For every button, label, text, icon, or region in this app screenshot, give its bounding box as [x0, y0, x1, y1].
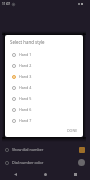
button[interactable]: Home — [30, 168, 60, 180]
staticText: 11:07 — [2, 2, 11, 6]
button[interactable]: Hand 7 — [5, 115, 83, 126]
staticText: Hand 2 — [19, 63, 32, 68]
button[interactable]: Hand 5 — [5, 93, 83, 104]
staticText: Select hand style — [10, 39, 45, 45]
staticText: Hand 3 — [19, 74, 32, 79]
button[interactable]: Hand 1 — [5, 49, 83, 60]
button[interactable]: Hand 3 — [5, 71, 83, 82]
staticText: Show dial number — [12, 147, 44, 152]
staticText: Hand 5 — [19, 96, 32, 101]
button[interactable]: Recents — [60, 168, 90, 180]
button[interactable]: Hand 2 — [5, 60, 83, 71]
staticText: Dial number color — [12, 160, 44, 165]
staticText: DONE — [67, 128, 78, 133]
button[interactable]: Back — [0, 168, 30, 180]
button[interactable]: Dial number color — [0, 156, 90, 169]
button[interactable]: Hand 4 — [5, 82, 83, 93]
staticText: Hand 6 — [19, 107, 32, 112]
staticText: Hand 7 — [19, 118, 32, 123]
button[interactable]: DONE — [62, 126, 83, 135]
button[interactable]: Hand 6 — [5, 104, 83, 115]
staticText: Hand 1 — [19, 52, 32, 57]
button[interactable]: Show dial number — [0, 143, 90, 156]
staticText: Hand 4 — [19, 85, 32, 90]
